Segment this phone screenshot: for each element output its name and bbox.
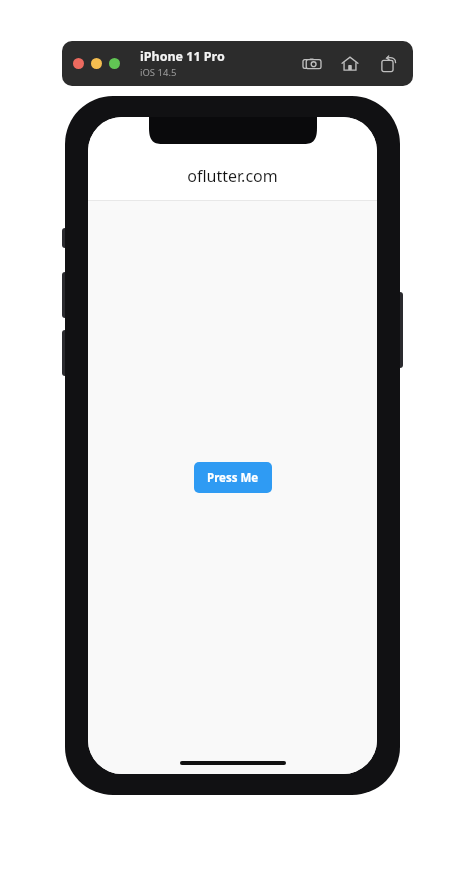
- staticText: Press Me: [207, 470, 259, 486]
- staticText: iPhone 11 Pro: [140, 48, 225, 65]
- button[interactable]: Screenshot: [299, 51, 325, 77]
- button[interactable]: Minimize: [91, 58, 102, 69]
- button[interactable]: Home: [337, 51, 363, 77]
- button[interactable]: Close: [73, 58, 84, 69]
- staticText: oflutter.com: [187, 165, 278, 187]
- button[interactable]: Rotate: [375, 51, 401, 77]
- staticText: iOS 14.5: [140, 66, 177, 79]
- button[interactable]: Maximize: [109, 58, 120, 69]
- button[interactable]: Press Me: [194, 462, 272, 493]
